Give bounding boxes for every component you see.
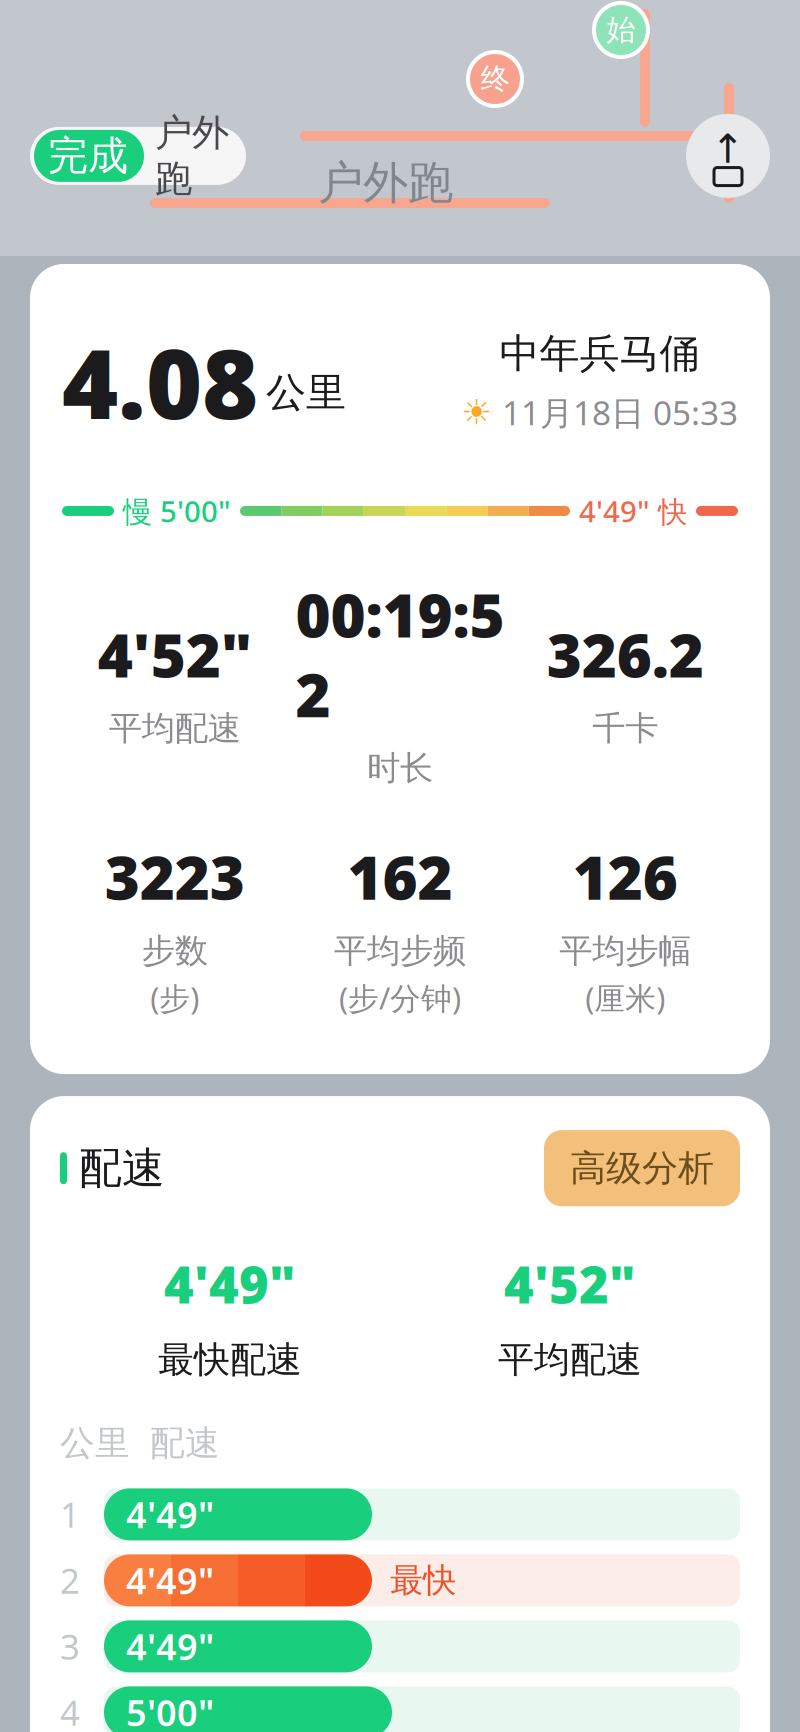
staticText: 3223 [105,837,245,916]
button[interactable]: Share [686,114,770,198]
staticText: 00:19:52 [295,574,504,734]
staticText: 4'49" [164,1250,296,1318]
staticText: 完成 [48,131,128,180]
staticText: 1 [60,1491,80,1537]
staticText: 中年兵马俑 [499,329,699,378]
staticText: 4'52" [98,614,252,694]
staticText: 终 [480,61,509,97]
staticText: (步) [150,977,199,1018]
staticText: 162 [347,837,452,916]
staticText: 3 [60,1623,80,1669]
staticText: ☀ [461,393,492,432]
staticText: 平均步幅 [559,930,691,971]
staticText: 最快 [390,1560,456,1601]
staticText: (步/分钟) [339,977,461,1018]
staticText: 配速 [79,1142,165,1194]
staticText: 高级分析 [570,1146,714,1190]
staticText: 126 [573,837,678,916]
staticText: 最快配速 [158,1338,302,1382]
staticText: 平均配速 [498,1338,642,1382]
button[interactable]: 高级分析 [544,1130,740,1206]
staticText: 公里 [60,1422,130,1464]
staticText: 4 [60,1689,80,1732]
staticText: 2 [60,1557,80,1603]
staticText: 时长 [367,748,433,789]
staticText: 户外跑 [318,155,453,211]
staticText: 5'00" [126,1688,214,1732]
staticText: 5G [639,4,686,52]
staticText: 公里 [266,368,346,417]
staticText: 步数 [142,930,208,971]
staticText: 11月18日 05:33 [502,390,738,434]
staticText: 平均配速 [109,708,241,749]
staticText: 始 [606,12,635,48]
staticText: (厘米) [585,977,665,1018]
staticText: 4'52" [504,1250,636,1318]
button[interactable]: 完成 [30,110,246,202]
staticText: ↑ [711,126,745,172]
staticText: 4.08 [62,318,258,445]
staticText: 户外跑 [155,110,229,202]
staticText: 4'49" 快 [579,491,687,530]
staticText: 平均步频 [334,930,466,971]
staticText: 4'49" [126,1490,214,1538]
staticText: 326.2 [547,614,704,694]
staticText: 千卡 [592,708,658,749]
staticText: 4'49" [126,1556,214,1604]
staticText: 配速 [150,1422,220,1464]
staticText: 4'49" [126,1622,214,1670]
staticText: 慢 5'00" [123,491,231,530]
